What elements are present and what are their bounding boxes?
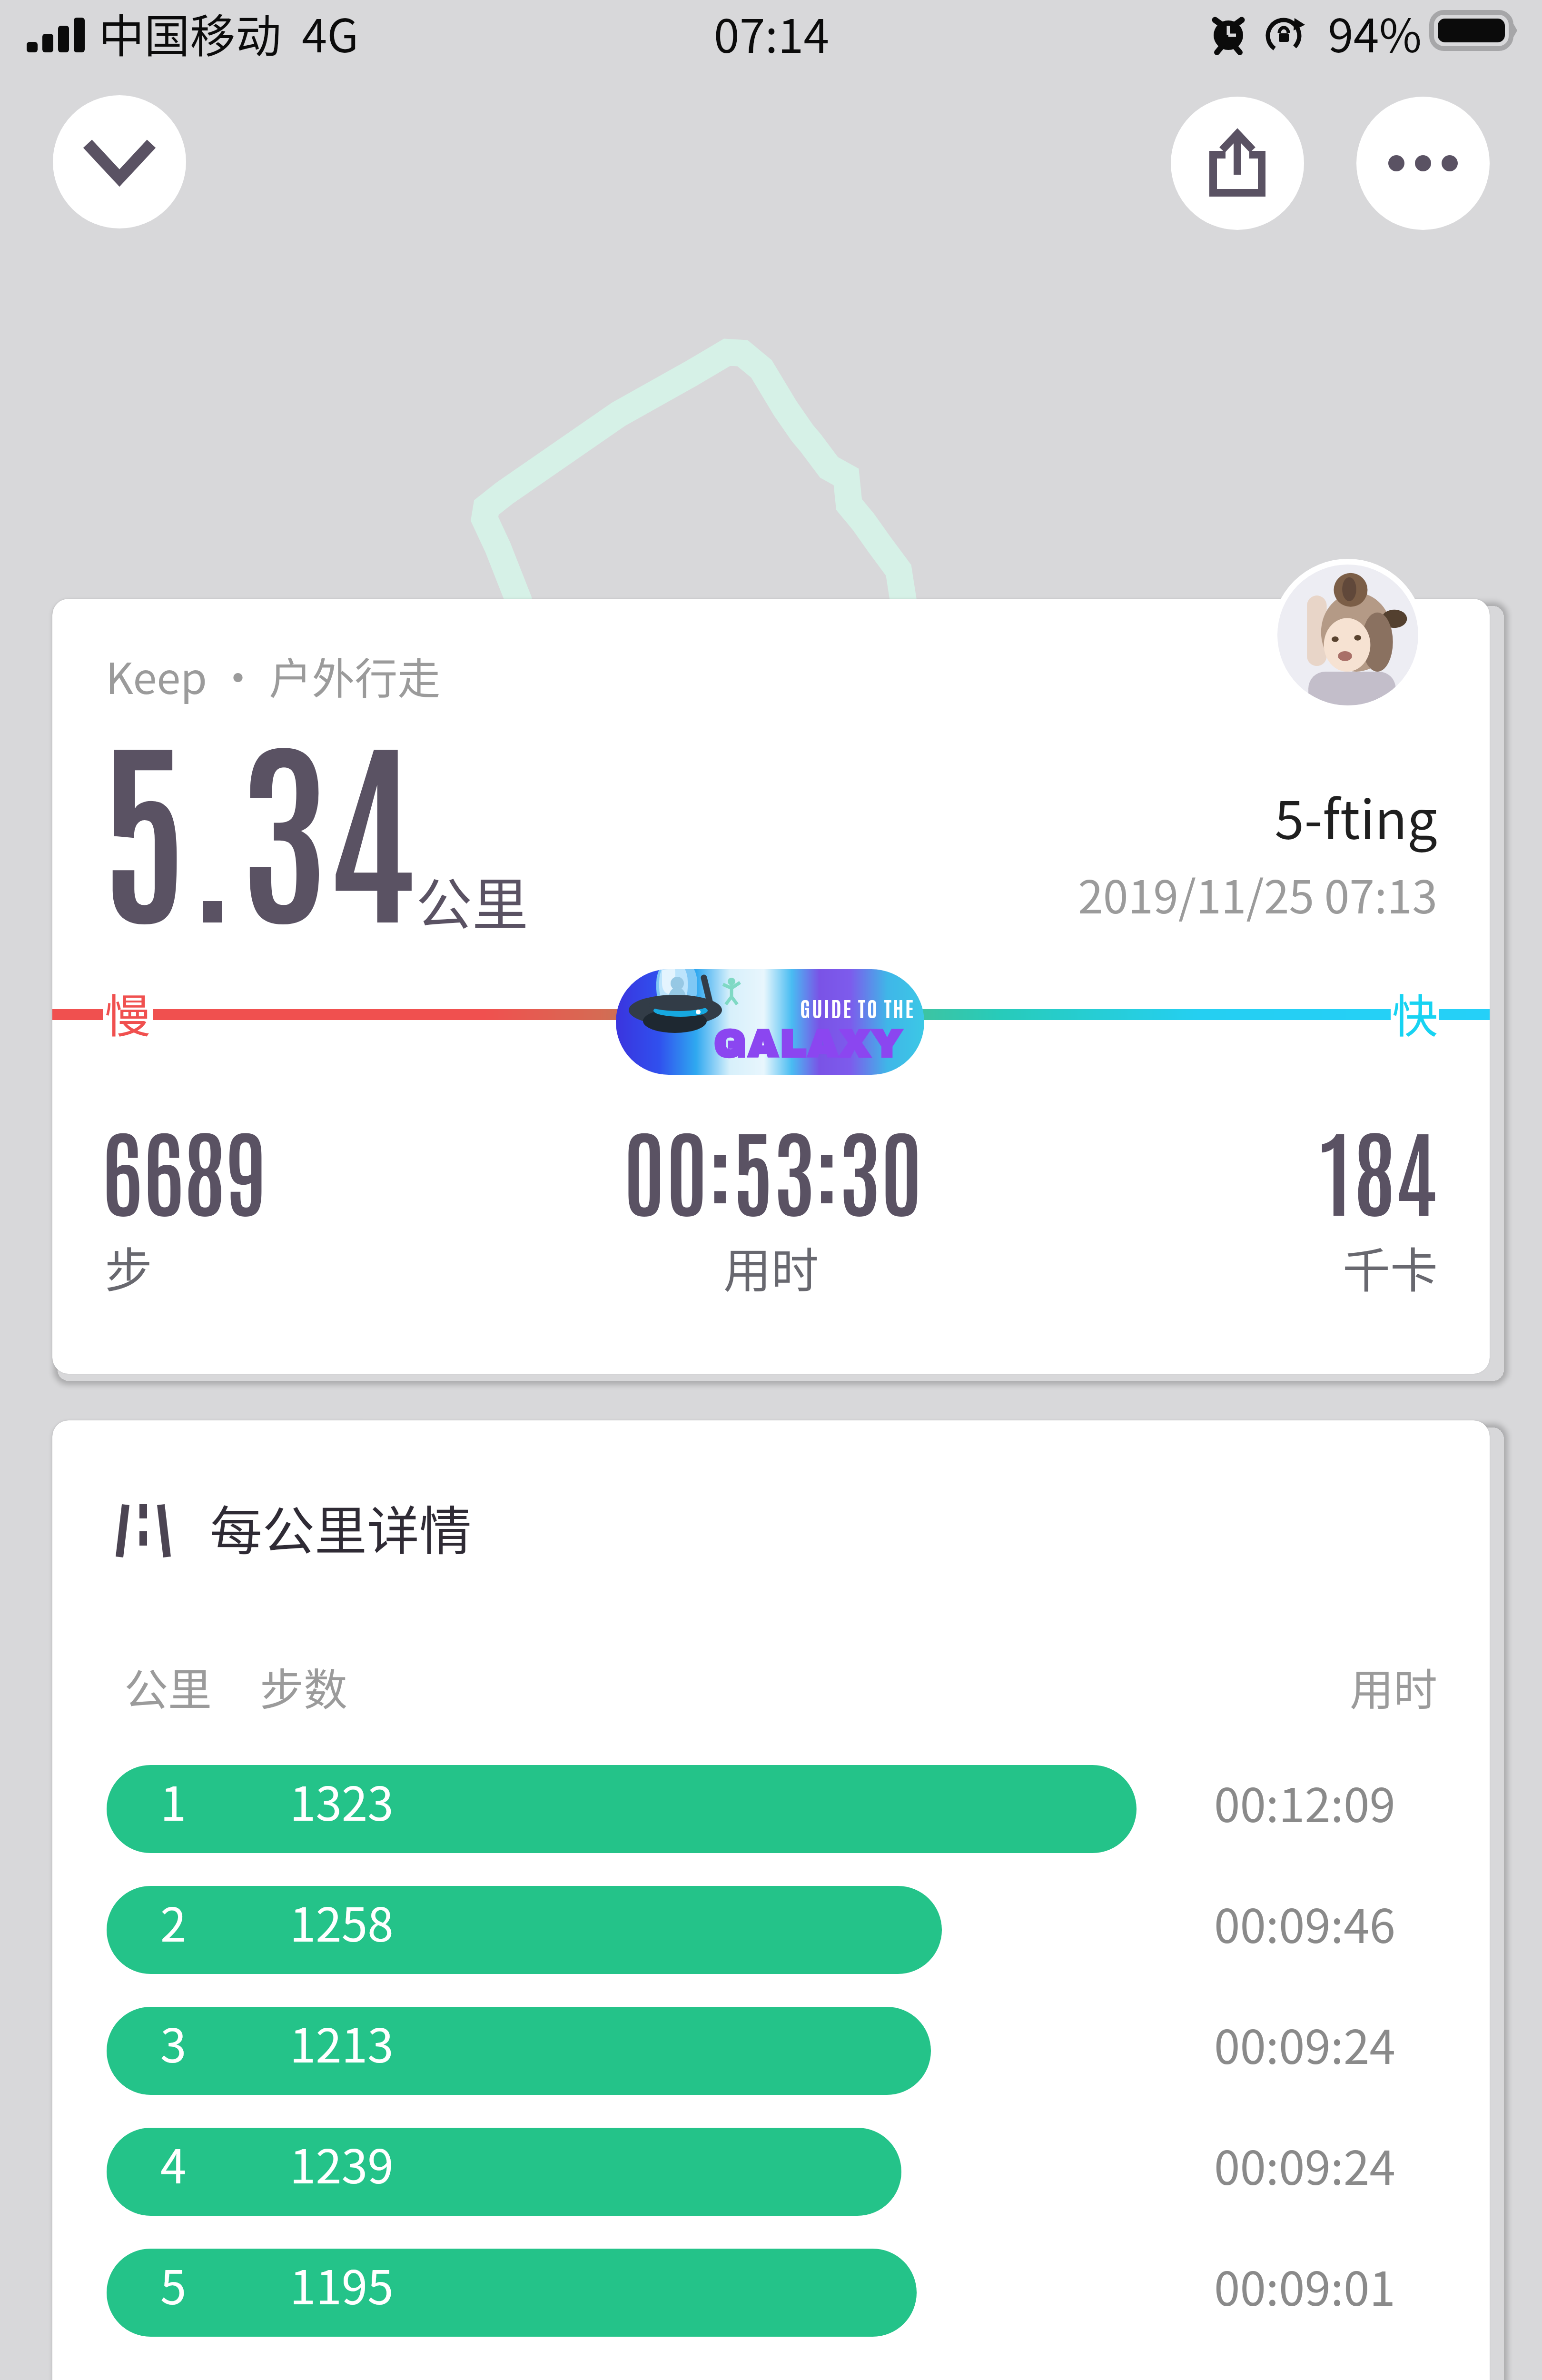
button[interactable] [52, 2232, 1490, 2353]
staticText: 00:09:01 [1214, 2251, 1395, 2319]
staticText: 5 [160, 2250, 187, 2318]
staticText: 00:12:09 [1214, 1768, 1395, 1835]
staticText: 1258 [290, 1887, 394, 1955]
staticText: 94% [1328, 0, 1422, 65]
button[interactable]: Collapse [53, 95, 186, 228]
staticText: GALAXY [713, 1024, 903, 1065]
staticText: 1 [160, 1766, 187, 1834]
staticText: 00:53:30 [2, 1106, 1542, 1229]
staticText: 07:14 [0, 0, 1542, 66]
staticText: 5.34 [99, 691, 415, 951]
button[interactable]: Share [1171, 97, 1304, 230]
staticText: 用时 [0, 1232, 1542, 1301]
staticText: 1213 [290, 2008, 394, 2076]
staticText: 00:09:24 [1214, 2131, 1395, 2198]
staticText: 公里 [416, 860, 529, 941]
button[interactable] [52, 1749, 1490, 1870]
staticText: 00:09:46 [1214, 1889, 1395, 1956]
button[interactable] [52, 1870, 1490, 1991]
staticText: 1195 [290, 2250, 394, 2318]
staticText: 5-fting [1275, 777, 1437, 854]
staticText: 00:09:24 [1214, 2010, 1395, 2077]
staticText: 184 [1318, 1106, 1437, 1229]
button[interactable]: Guide to the Galaxy badge [616, 969, 924, 1075]
button[interactable] [52, 2112, 1490, 2232]
staticText: 公里 [124, 1655, 212, 1718]
staticText: 2 [160, 1887, 187, 1955]
staticText: GUIDE TO THE [800, 994, 915, 1021]
button[interactable]: More options [1356, 97, 1490, 230]
staticText: 千卡 [1343, 1232, 1438, 1301]
staticText: 1239 [290, 2129, 394, 2197]
staticText: 快 [1392, 980, 1438, 1046]
staticText: 中国移动 4G [99, 0, 359, 66]
staticText: 步 [105, 1232, 152, 1301]
staticText: 每公里详情 [210, 1489, 472, 1565]
staticText: 4 [160, 2129, 187, 2197]
button[interactable] [52, 1991, 1490, 2112]
staticText: 1323 [290, 1766, 394, 1834]
staticText: 慢 [105, 980, 150, 1046]
staticText: 步数 [260, 1655, 348, 1718]
staticText: 用时 [1350, 1655, 1438, 1718]
staticText: 2019/11/25 07:13 [1078, 861, 1437, 927]
staticText: 6689 [101, 1106, 267, 1229]
staticText: Keep · 户外行走 [106, 645, 441, 706]
staticText: 3 [160, 2008, 187, 2076]
